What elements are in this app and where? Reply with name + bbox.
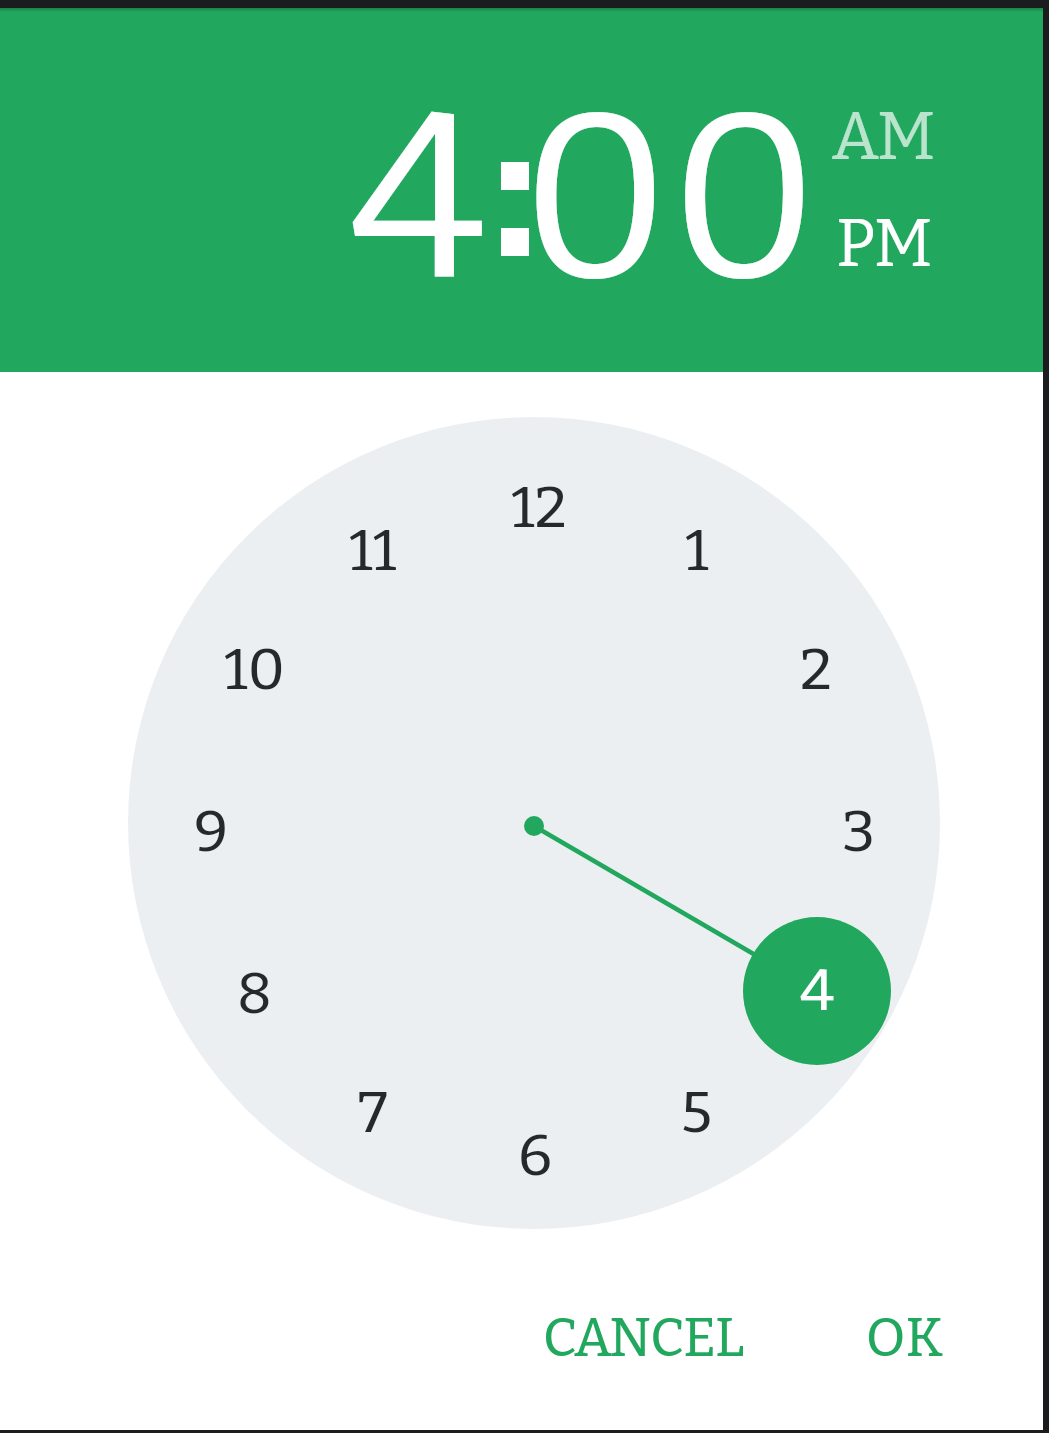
staticText: 10: [224, 635, 285, 705]
button[interactable]: 11: [328, 511, 418, 591]
staticText: 5: [681, 1078, 713, 1148]
button[interactable]: PM: [804, 198, 964, 288]
staticText: PM: [836, 204, 933, 283]
staticText: 2: [800, 635, 832, 705]
button[interactable]: 9: [166, 792, 256, 872]
staticText: 7: [358, 1078, 388, 1148]
button[interactable]: 10: [209, 630, 299, 710]
button[interactable]: 7: [328, 1073, 418, 1153]
staticText: 8: [237, 959, 272, 1029]
button[interactable]: 6: [490, 1116, 580, 1196]
button[interactable]: 3: [814, 792, 904, 872]
staticText: 4: [350, 60, 486, 338]
staticText: OK: [866, 1306, 944, 1370]
button[interactable]: 5: [652, 1073, 742, 1153]
button[interactable]: OK: [835, 1293, 975, 1383]
button[interactable]: AM: [804, 91, 964, 181]
staticText: 1: [685, 516, 709, 586]
button[interactable]: 2: [771, 630, 861, 710]
staticText: CANCEL: [543, 1306, 744, 1370]
staticText: 00: [521, 60, 819, 338]
button[interactable]: 12: [494, 468, 584, 548]
staticText: 12: [511, 473, 567, 543]
button[interactable]: 8: [209, 954, 299, 1034]
staticText: AM: [832, 97, 936, 176]
button[interactable]: 1: [652, 511, 742, 591]
staticText: 4: [800, 956, 835, 1026]
staticText: 3: [842, 797, 876, 867]
button[interactable]: CANCEL: [513, 1293, 773, 1383]
staticText: 11: [349, 516, 397, 586]
staticText: 9: [194, 797, 229, 867]
button[interactable]: 4: [743, 917, 891, 1065]
staticText: 6: [518, 1121, 553, 1191]
